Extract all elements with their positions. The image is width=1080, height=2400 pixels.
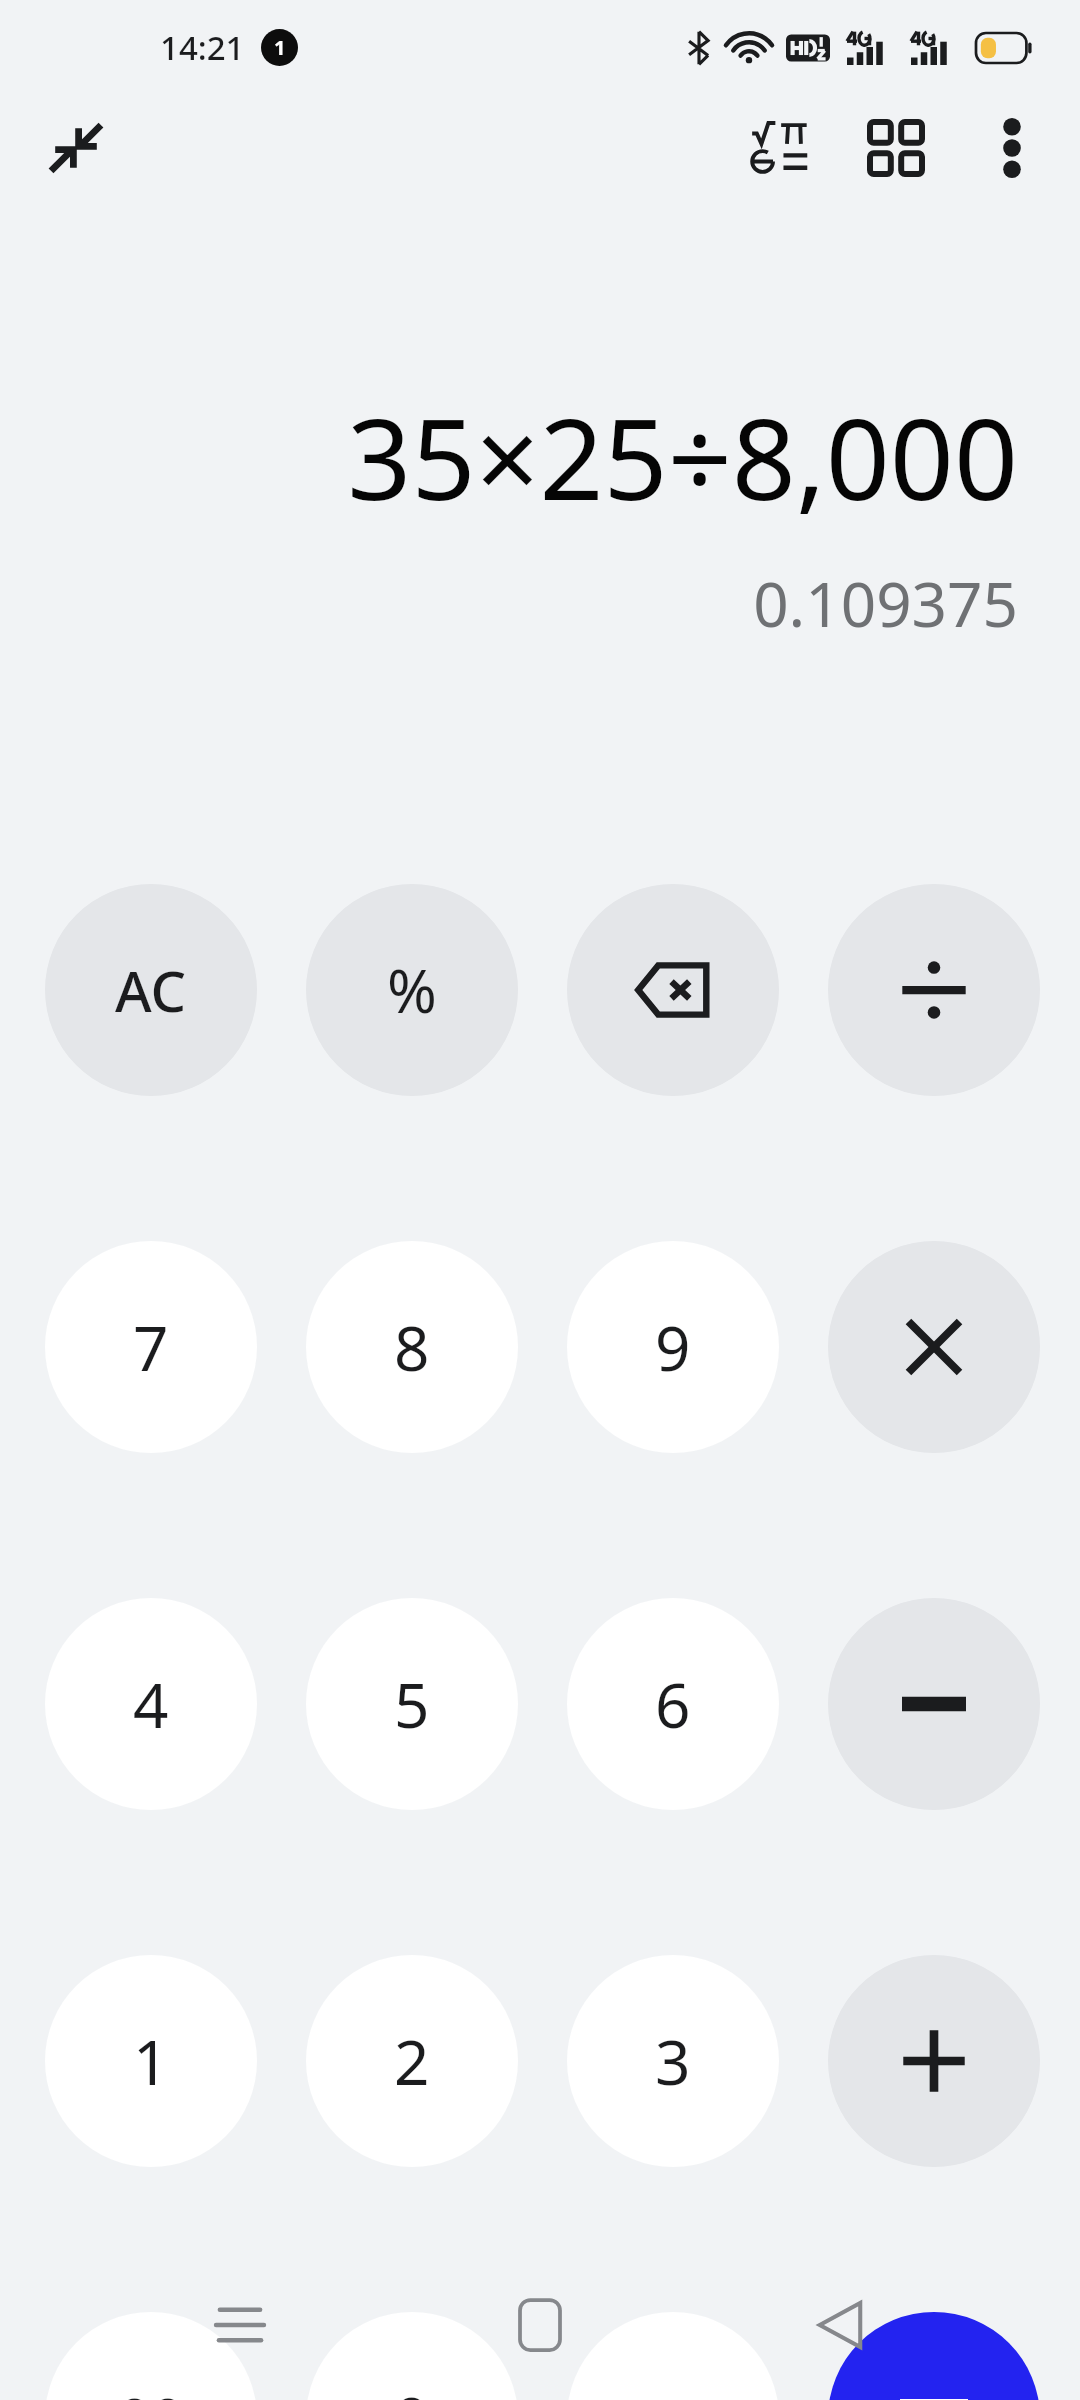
button[interactable]: More options <box>964 100 1060 196</box>
button[interactable]: Plus <box>828 1955 1040 2167</box>
staticText: 0.109375 <box>753 561 1018 645</box>
staticText: 35×25÷8,000 <box>347 380 1018 533</box>
button[interactable]: Keypad layout <box>848 100 944 196</box>
staticText: 1 <box>133 2019 169 2103</box>
staticText: 14:21 <box>160 25 245 70</box>
staticText: 8 <box>394 1305 430 1389</box>
button[interactable]: . <box>567 2312 779 2400</box>
button[interactable]: 7 <box>45 1241 257 1453</box>
staticText: 3 <box>655 2019 691 2103</box>
button[interactable]: Scientific mode <box>732 100 828 196</box>
staticText: 0 <box>394 2376 430 2400</box>
button[interactable]: Backspace <box>567 884 779 1096</box>
button[interactable]: AC <box>45 884 257 1096</box>
staticText: 1 <box>274 34 286 61</box>
button[interactable]: Multiply <box>828 1241 1040 1453</box>
button[interactable]: 3 <box>567 1955 779 2167</box>
button[interactable]: 2 <box>306 1955 518 2167</box>
button[interactable]: 9 <box>567 1241 779 1453</box>
staticText: AC <box>115 952 187 1028</box>
button[interactable]: 0 <box>306 2312 518 2400</box>
button[interactable]: Home <box>480 2265 600 2385</box>
button[interactable]: 00 <box>45 2312 257 2400</box>
staticText: 00 <box>118 2379 185 2400</box>
staticText: % <box>387 949 437 1031</box>
button[interactable]: Collapse <box>28 100 124 196</box>
button[interactable]: % <box>306 884 518 1096</box>
button[interactable]: 4 <box>45 1598 257 1810</box>
button[interactable]: Equals <box>828 2312 1040 2400</box>
button[interactable]: Back <box>780 2265 900 2385</box>
button[interactable]: Minus <box>828 1598 1040 1810</box>
button[interactable]: 5 <box>306 1598 518 1810</box>
button[interactable]: 8 <box>306 1241 518 1453</box>
staticText: 5 <box>394 1662 430 1746</box>
staticText: 4 <box>133 1662 169 1746</box>
button[interactable]: 1 <box>45 1955 257 2167</box>
staticText: 7 <box>133 1305 169 1389</box>
button[interactable]: 6 <box>567 1598 779 1810</box>
staticText: 9 <box>655 1305 691 1389</box>
staticText: 2 <box>394 2019 430 2103</box>
button[interactable]: Divide <box>828 884 1040 1096</box>
staticText: 6 <box>655 1662 691 1746</box>
button[interactable]: Recent apps <box>180 2265 300 2385</box>
